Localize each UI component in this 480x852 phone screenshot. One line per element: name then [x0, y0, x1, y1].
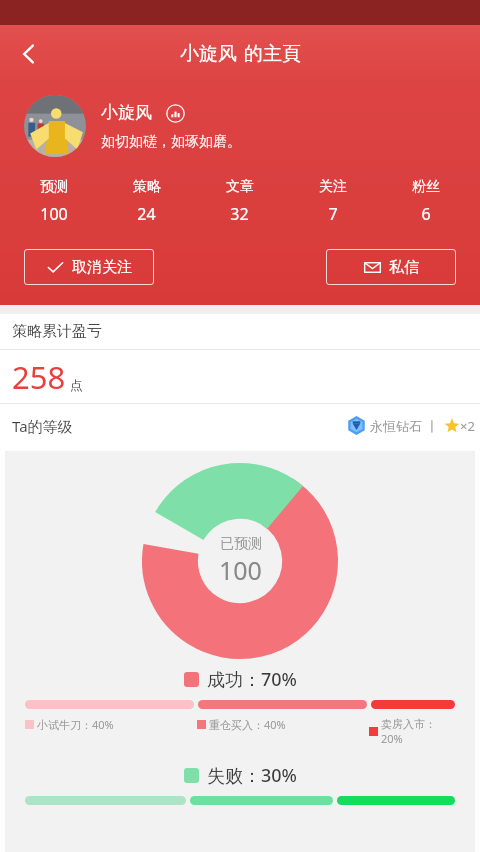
button[interactable]: 关注 — [286, 178, 379, 225]
staticText: 失败：30% — [207, 763, 297, 788]
button[interactable]: Ta的等级 — [0, 404, 480, 447]
staticText: 预测 — [40, 178, 68, 196]
staticText: 永恒钻石 丨 — [370, 417, 439, 435]
staticText: 小旋风 — [180, 42, 237, 66]
staticText: 重仓买入：40% — [209, 717, 286, 732]
staticText: 100 — [219, 553, 262, 587]
staticText: 粉丝 — [412, 178, 440, 196]
staticText: 策略累计盈亏 — [12, 322, 102, 341]
staticText: 文章 — [226, 178, 254, 196]
staticText: ×2 — [460, 417, 475, 435]
button[interactable]: 策略 — [100, 178, 193, 225]
staticText: 258 — [12, 356, 66, 398]
staticText: 已预测 — [220, 535, 262, 553]
button[interactable]: 取消关注 — [24, 249, 154, 285]
staticText: 小旋风 — [101, 102, 152, 123]
staticText: 成功：70% — [207, 667, 297, 692]
staticText: 小试牛刀：40% — [37, 717, 114, 732]
staticText: 私信 — [389, 258, 419, 277]
staticText: 24 — [137, 203, 156, 225]
staticText: Ta的等级 — [12, 416, 73, 436]
staticText: 取消关注 — [72, 258, 132, 277]
button[interactable]: 文章 — [193, 178, 286, 225]
staticText: 点 — [70, 377, 83, 393]
staticText: 6 — [421, 203, 431, 225]
button[interactable]: Statistics — [165, 103, 185, 123]
button[interactable] — [24, 95, 86, 157]
staticText: 策略 — [133, 178, 161, 196]
staticText: 关注 — [319, 178, 347, 196]
staticText: 卖房入市：20% — [381, 717, 455, 746]
staticText: 100 — [40, 203, 68, 225]
staticText: 7 — [328, 203, 338, 225]
button[interactable]: 预测 — [8, 178, 100, 225]
button[interactable]: 粉丝 — [379, 178, 472, 225]
staticText: 的主頁 — [244, 42, 301, 66]
button[interactable]: 私信 — [326, 249, 456, 285]
staticText: 32 — [230, 203, 249, 225]
button[interactable]: Back — [2, 27, 56, 81]
staticText: 如切如磋，如琢如磨。 — [101, 133, 241, 151]
